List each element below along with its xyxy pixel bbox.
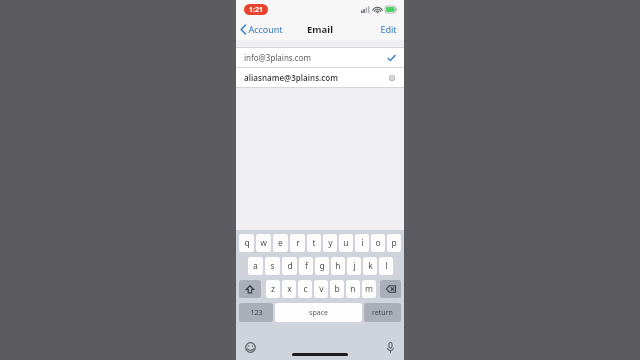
button[interactable]: z	[266, 280, 280, 298]
button[interactable]: p	[387, 234, 401, 252]
button[interactable]: Shift	[239, 280, 261, 298]
button[interactable]: g	[315, 257, 329, 275]
button[interactable]: a	[248, 257, 263, 275]
button[interactable]: l	[379, 257, 393, 275]
button[interactable]: 123	[239, 303, 273, 322]
button[interactable]: w	[256, 234, 271, 252]
staticText: o	[375, 237, 381, 249]
button[interactable]: Backspace	[380, 280, 401, 298]
staticText: p	[391, 237, 397, 249]
staticText: Edit	[380, 23, 397, 35]
button[interactable]: q	[239, 234, 254, 252]
staticText: s	[270, 260, 275, 272]
button[interactable]: x	[282, 280, 296, 298]
button[interactable]: aliasname@3plains.com	[236, 68, 404, 87]
staticText: info@3plains.com	[244, 52, 311, 63]
staticText: x	[287, 283, 292, 295]
staticText: e	[278, 237, 283, 249]
button[interactable]: Dictation	[384, 339, 397, 356]
staticText: return	[372, 308, 393, 318]
staticText: d	[287, 260, 293, 272]
button[interactable]: o	[371, 234, 385, 252]
staticText: Account	[248, 23, 283, 35]
button[interactable]: u	[339, 234, 353, 252]
button[interactable]: t	[307, 234, 321, 252]
button[interactable]: Account	[236, 20, 289, 38]
staticText: m	[365, 283, 373, 295]
staticText: n	[350, 283, 356, 295]
button[interactable]: y	[323, 234, 337, 252]
button[interactable]: i	[355, 234, 369, 252]
staticText: v	[319, 283, 324, 295]
button[interactable]: k	[363, 257, 377, 275]
button[interactable]: h	[331, 257, 345, 275]
staticText: g	[319, 260, 325, 272]
staticText: f	[305, 260, 308, 272]
staticText: r	[296, 237, 300, 249]
button[interactable]: space	[275, 303, 362, 322]
button[interactable]: v	[314, 280, 328, 298]
button[interactable]: e	[273, 234, 288, 252]
button[interactable]: s	[265, 257, 280, 275]
staticText: 123	[250, 308, 263, 318]
staticText: w	[260, 237, 267, 249]
staticText: c	[303, 283, 308, 295]
staticText: a	[253, 260, 258, 272]
button[interactable]: c	[298, 280, 312, 298]
staticText: l	[385, 260, 388, 272]
button[interactable]: Emoji	[242, 339, 259, 356]
staticText: t	[312, 237, 316, 249]
staticText: i	[361, 237, 364, 249]
button[interactable]: m	[362, 280, 376, 298]
button[interactable]: b	[330, 280, 344, 298]
staticText: h	[335, 260, 341, 272]
staticText: y	[328, 237, 333, 249]
staticText: aliasname@3plains.com	[244, 72, 338, 83]
staticText: 1:21	[249, 5, 263, 15]
button[interactable]: f	[299, 257, 313, 275]
staticText: b	[334, 283, 340, 295]
button[interactable]: return	[364, 303, 401, 322]
button[interactable]: r	[290, 234, 305, 252]
staticText: z	[271, 283, 275, 295]
button[interactable]: n	[346, 280, 360, 298]
button[interactable]: Edit	[373, 20, 404, 38]
staticText: u	[343, 237, 349, 249]
staticText: Email	[307, 23, 333, 36]
staticText: k	[368, 260, 373, 272]
button[interactable]: info@3plains.com	[236, 48, 404, 67]
button[interactable]: d	[282, 257, 297, 275]
staticText: space	[309, 308, 328, 318]
staticText: q	[244, 237, 250, 249]
button[interactable]: j	[347, 257, 361, 275]
staticText: j	[353, 260, 356, 272]
